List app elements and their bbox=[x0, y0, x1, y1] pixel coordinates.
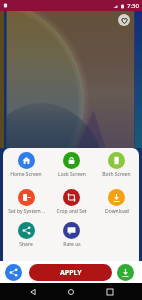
button[interactable]: Download bbox=[117, 264, 134, 281]
staticText: Crop and Set bbox=[56, 208, 87, 215]
staticText: APPLY bbox=[60, 268, 82, 278]
button[interactable]: Set by System .. bbox=[3, 189, 49, 215]
staticText: Both Screen bbox=[102, 171, 131, 178]
button[interactable]: Favourite bbox=[118, 14, 130, 26]
button[interactable]: Download bbox=[94, 189, 139, 215]
button[interactable]: Share bbox=[3, 222, 49, 248]
button[interactable]: Back bbox=[27, 286, 39, 298]
button[interactable]: Rate us bbox=[49, 222, 94, 248]
staticText: Share bbox=[19, 241, 33, 248]
staticText: Set by System .. bbox=[8, 208, 45, 215]
button[interactable]: Both Screen bbox=[94, 152, 139, 178]
staticText: Rate us bbox=[63, 241, 81, 248]
staticText: Lock Screen bbox=[58, 171, 86, 178]
staticText: Download bbox=[105, 208, 129, 215]
button[interactable]: APPLY bbox=[29, 264, 112, 281]
staticText: Home Screen bbox=[10, 171, 42, 178]
button[interactable]: Home Screen bbox=[3, 152, 49, 178]
button[interactable]: Crop and Set bbox=[49, 189, 94, 215]
staticText: 7:30 bbox=[127, 2, 139, 10]
button[interactable]: Share bbox=[5, 264, 22, 281]
button[interactable]: Home bbox=[65, 286, 77, 298]
button[interactable]: Recents bbox=[104, 286, 116, 298]
button[interactable]: Lock Screen bbox=[49, 152, 94, 178]
